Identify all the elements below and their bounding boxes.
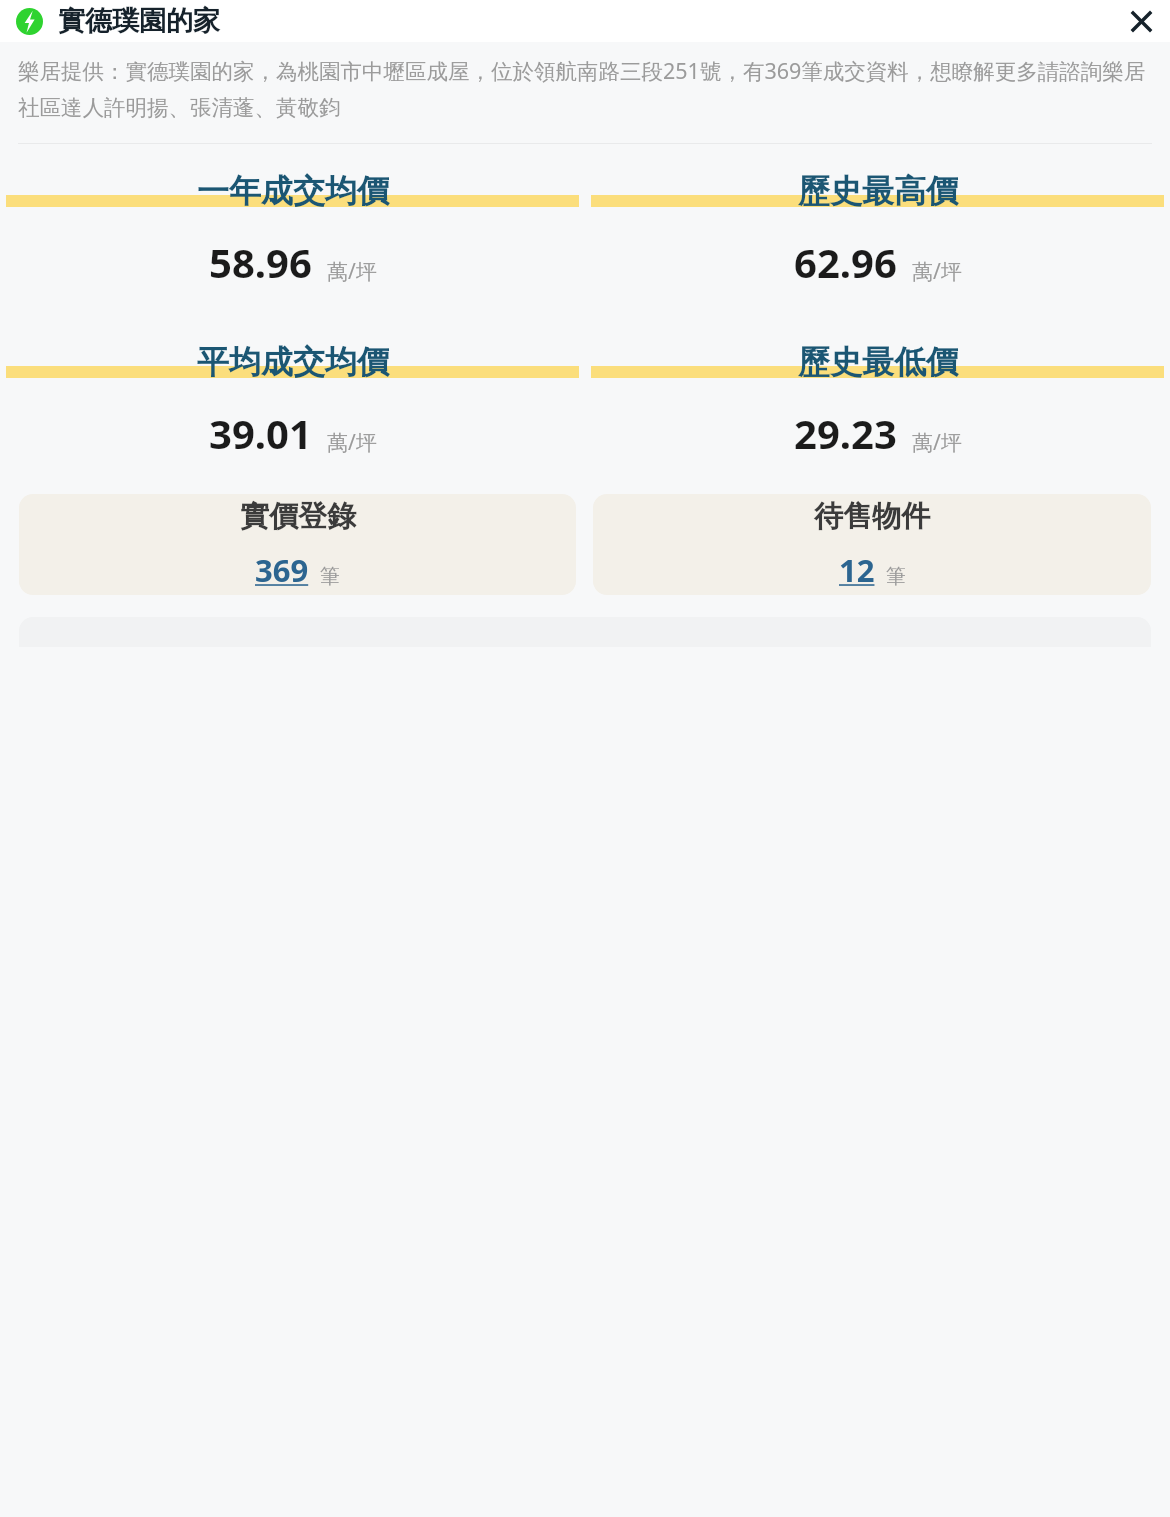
staticText: 369 [255,549,309,591]
button[interactable]: Close [1120,0,1162,42]
staticText: 62.96 [794,235,897,289]
staticText: 平均成交均價 [197,342,389,382]
button[interactable]: 平均成交均價 [0,342,585,460]
staticText: 筆 [886,564,906,589]
staticText: 實價登錄 [240,498,356,535]
staticText: 39.01 [209,406,312,460]
staticText: 待售物件 [814,498,930,535]
staticText: 歷史最高價 [798,171,958,211]
staticText: 萬/坪 [912,428,962,457]
button[interactable]: 歷史最低價 [585,342,1170,460]
staticText: 歷史最低價 [798,342,958,382]
staticText: 12 [839,549,875,591]
staticText: 樂居提供：實德璞園的家，為桃園市中壢區成屋，位於領航南路三段251號，有369筆… [18,56,1152,121]
staticText: 萬/坪 [327,257,377,286]
staticText: 29.23 [794,406,897,460]
button[interactable]: 一年成交均價 [0,171,585,289]
staticText: 實德璞園的家 [58,4,220,38]
button[interactable]: 歷史最高價 [585,171,1170,289]
staticText: 萬/坪 [327,428,377,457]
staticText: 筆 [320,564,340,589]
staticText: 一年成交均價 [197,171,389,211]
staticText: 58.96 [209,235,312,289]
staticText: 萬/坪 [912,257,962,286]
button[interactable]: 待售物件 [593,494,1151,595]
button[interactable]: 實價登錄 [19,494,576,595]
